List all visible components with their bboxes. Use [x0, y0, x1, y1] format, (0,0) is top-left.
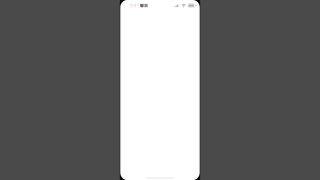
staticText: 9:41 — [129, 2, 139, 9]
